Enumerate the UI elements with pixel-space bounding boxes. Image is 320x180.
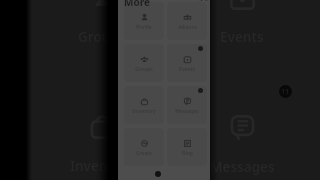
button[interactable]: Blog <box>167 128 207 166</box>
staticText: Messages <box>210 158 275 176</box>
staticText: 11 <box>281 87 290 97</box>
staticText: Groups <box>78 28 126 46</box>
button[interactable]: Search <box>197 0 202 1</box>
staticText: Inventory <box>70 157 135 175</box>
button[interactable]: Profile <box>124 2 164 40</box>
button[interactable]: Create <box>124 128 164 166</box>
staticText: More <box>124 0 150 9</box>
staticText: Events <box>179 66 195 73</box>
staticText: Messages <box>175 108 199 115</box>
staticText: Alliance <box>178 24 197 31</box>
staticText: Groups <box>135 66 153 73</box>
staticText: Inventory <box>132 108 156 115</box>
staticText: Blog <box>182 150 193 157</box>
staticText: Profile <box>136 24 152 31</box>
button[interactable]: Groups <box>124 44 164 82</box>
button[interactable]: Events <box>167 44 207 82</box>
staticText: Create <box>136 150 152 157</box>
button[interactable]: Account <box>204 0 209 1</box>
button[interactable]: Alliance <box>167 2 207 40</box>
button[interactable]: Messages <box>167 86 207 124</box>
button[interactable]: Inventory <box>124 86 164 124</box>
staticText: Events <box>220 28 264 46</box>
